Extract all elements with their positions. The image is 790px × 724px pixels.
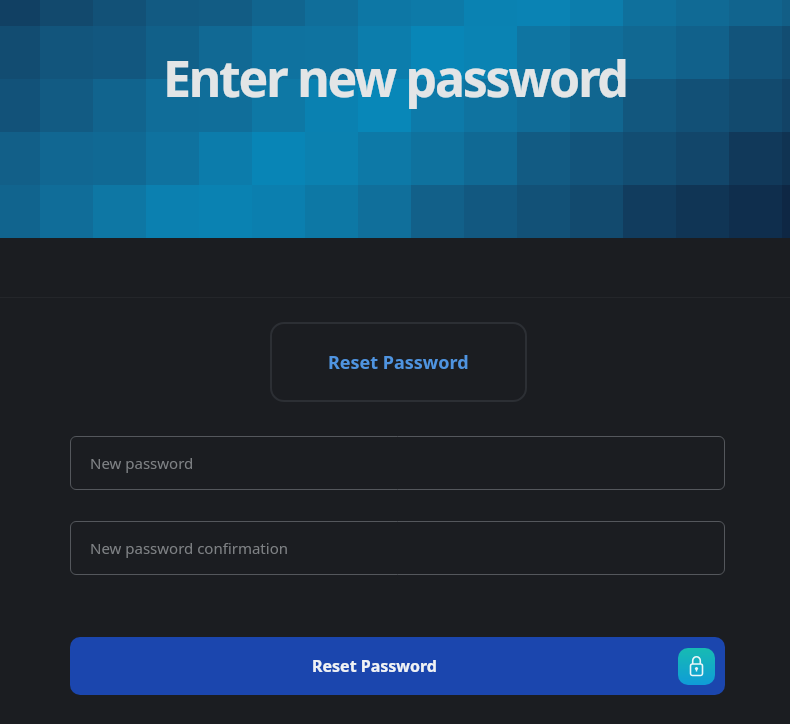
staticText: Reset Password	[328, 350, 469, 375]
staticText: New password	[90, 453, 194, 473]
button[interactable]: Reset Password	[270, 322, 527, 402]
button[interactable]: Reset Password	[70, 637, 725, 695]
button[interactable]: New password confirmation	[70, 521, 725, 575]
staticText: Enter new password	[163, 44, 627, 112]
button[interactable]: New password	[70, 436, 725, 490]
staticText: New password confirmation	[90, 538, 288, 558]
staticText: Reset Password	[312, 655, 437, 677]
